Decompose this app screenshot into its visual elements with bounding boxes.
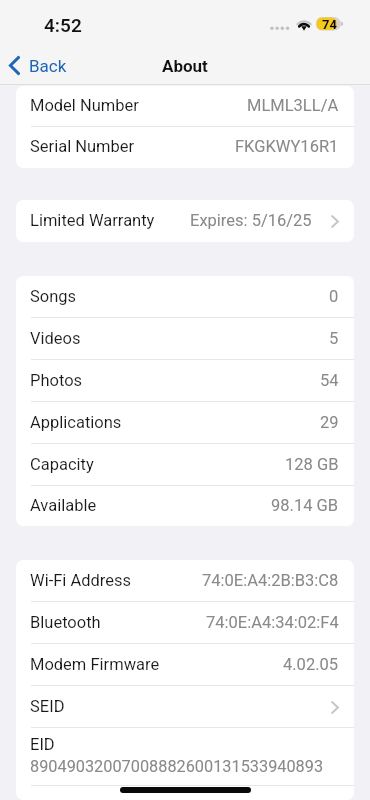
staticText: Limited Warranty — [30, 211, 155, 230]
staticText: 29 — [320, 413, 339, 432]
staticText: 74:0E:A4:2B:B3:C8 — [202, 571, 339, 590]
staticText: Capacity — [30, 455, 94, 474]
staticText: 4:52 — [44, 14, 82, 36]
button[interactable]: Songs — [16, 276, 354, 318]
button[interactable]: Modem Firmware — [16, 644, 354, 686]
staticText: Applications — [30, 413, 122, 432]
button[interactable]: Model Number — [16, 86, 354, 127]
staticText: MLML3LL/A — [247, 96, 339, 115]
staticText: 5 — [329, 329, 339, 348]
button[interactable]: Capacity — [16, 444, 354, 486]
button[interactable]: Videos — [16, 318, 354, 360]
staticText: EID — [30, 735, 55, 754]
staticText: Bluetooth — [30, 613, 101, 632]
staticText: 4.02.05 — [283, 655, 339, 674]
staticText: Videos — [30, 329, 81, 348]
staticText: 74 — [322, 17, 337, 32]
button[interactable]: EID — [16, 728, 354, 786]
staticText: Photos — [30, 371, 83, 390]
staticText: 89049032007008882600131533940893 — [30, 757, 324, 776]
staticText: 0 — [329, 287, 339, 306]
staticText: 98.14 GB — [271, 496, 339, 515]
button[interactable]: SEID — [16, 686, 354, 728]
staticText: Modem Firmware — [30, 655, 160, 674]
staticText: 54 — [320, 371, 339, 390]
button[interactable]: Photos — [16, 360, 354, 402]
button[interactable]: Applications — [16, 402, 354, 444]
staticText: Wi-Fi Address — [30, 571, 132, 590]
button[interactable]: Back — [0, 46, 77, 85]
button[interactable]: Wi-Fi Address — [16, 560, 354, 602]
staticText: About — [162, 56, 208, 76]
button[interactable]: Available — [16, 486, 354, 526]
staticText: SEID — [30, 697, 65, 716]
staticText: FKGKWY16R1 — [235, 137, 339, 156]
staticText: 74:0E:A4:34:02:F4 — [206, 613, 339, 632]
staticText: 128 GB — [285, 455, 339, 474]
staticText: Songs — [30, 287, 77, 306]
button[interactable]: Serial Number — [16, 127, 354, 168]
staticText: Back — [29, 56, 67, 76]
staticText: Serial Number — [30, 137, 135, 156]
button[interactable]: Bluetooth — [16, 602, 354, 644]
staticText: Expires: 5/16/25 — [190, 211, 312, 230]
staticText: Available — [30, 496, 97, 515]
staticText: Model Number — [30, 96, 139, 115]
button[interactable]: Limited Warranty — [16, 200, 354, 242]
